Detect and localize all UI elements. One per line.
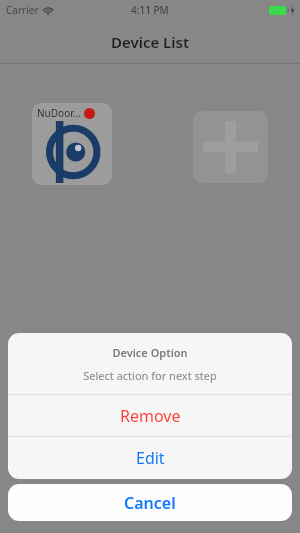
button[interactable]: Add device xyxy=(193,111,268,183)
staticText: Remove xyxy=(120,405,181,427)
button[interactable]: NuDoor... xyxy=(32,103,112,185)
staticText: Carrier xyxy=(6,3,39,17)
button[interactable]: Cancel xyxy=(8,484,292,521)
staticText: Device List xyxy=(111,32,190,52)
staticText: NuDoor... xyxy=(37,106,81,120)
staticText: Device Option xyxy=(112,345,188,360)
staticText: Edit xyxy=(136,447,165,469)
staticText: Cancel xyxy=(124,492,176,514)
staticText: Select action for next step xyxy=(83,368,217,383)
button[interactable]: Remove xyxy=(8,395,292,436)
staticText: 4:11 PM xyxy=(131,3,169,17)
button[interactable]: Edit xyxy=(8,437,292,479)
